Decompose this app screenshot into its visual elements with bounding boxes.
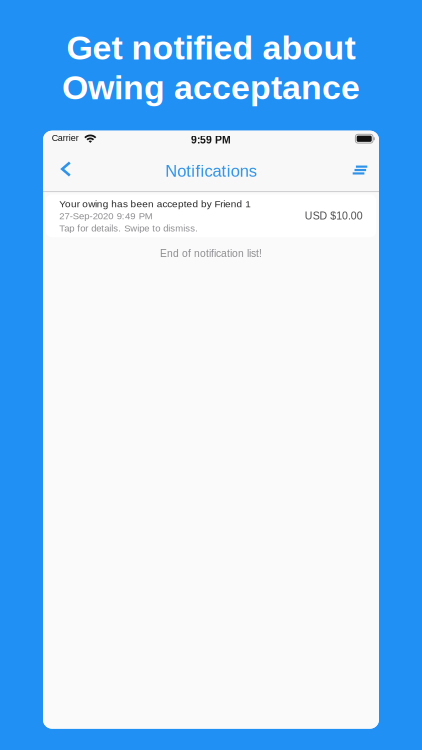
staticText: 9:59 PM (191, 134, 231, 146)
staticText: Tap for details. Swipe to dismiss. (59, 223, 198, 233)
staticText: Get notified about (66, 29, 355, 67)
staticText: 27-Sep-2020 9:49 PM (59, 211, 153, 221)
staticText: Carrier (52, 133, 79, 143)
staticText: Your owing has been accepted by Friend 1 (59, 198, 251, 209)
staticText: End of notification list! (160, 248, 262, 259)
staticText: Owing acceptance (62, 69, 360, 106)
staticText: USD $10.00 (305, 210, 363, 222)
button[interactable]: Sort notifications (343, 151, 377, 190)
button[interactable]: Back (49, 151, 83, 190)
button[interactable]: Your owing has been accepted by Friend 1 (46, 194, 376, 237)
staticText: Notifications (165, 162, 257, 180)
